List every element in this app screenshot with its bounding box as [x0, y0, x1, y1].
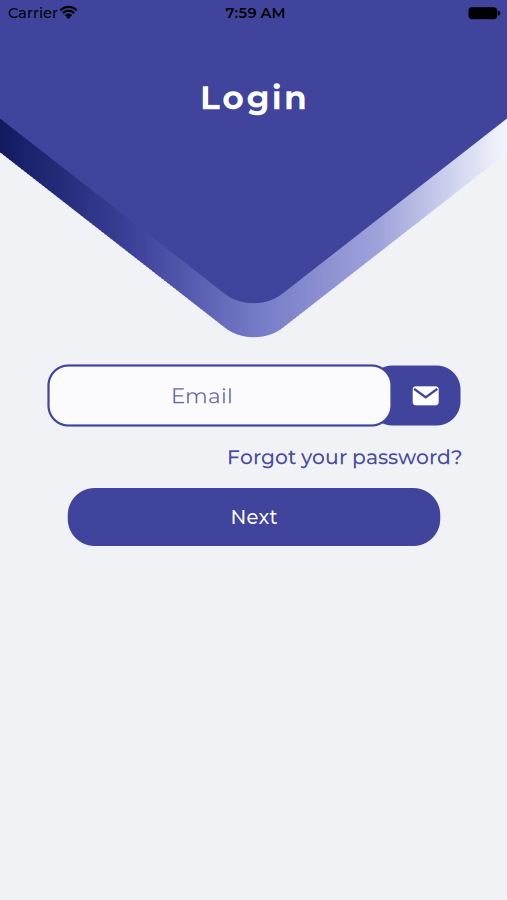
staticText: Next — [230, 505, 277, 529]
button[interactable]: Forgot your password? — [227, 445, 463, 469]
button[interactable]: Next — [68, 488, 440, 546]
staticText: Forgot your password? — [227, 445, 463, 469]
staticText: Carrier — [8, 4, 58, 22]
staticText: Email — [171, 382, 233, 408]
staticText: Login — [200, 77, 307, 118]
button[interactable]: Submit email — [368, 365, 460, 425]
button[interactable]: Email text field — [48, 365, 391, 425]
staticText: 7:59 AM — [225, 4, 285, 22]
